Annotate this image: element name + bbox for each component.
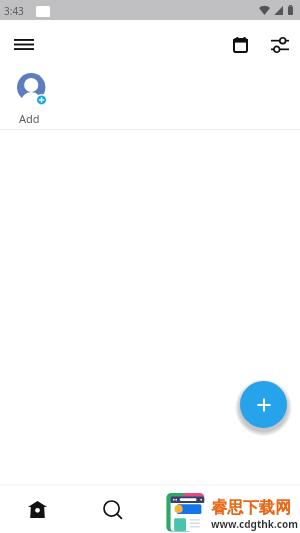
button[interactable]: Profile bbox=[225, 486, 300, 533]
staticText: 3:43 bbox=[4, 4, 24, 18]
staticText: www.cdgthk.com bbox=[211, 517, 298, 531]
button[interactable]: Calendar bbox=[220, 25, 260, 65]
button[interactable]: Add bbox=[6, 68, 56, 126]
button[interactable]: Home bbox=[0, 486, 75, 533]
staticText: Add bbox=[19, 111, 40, 126]
button[interactable]: Search bbox=[75, 486, 150, 533]
button[interactable]: Filter bbox=[260, 25, 300, 65]
button[interactable]: Add bbox=[240, 381, 287, 428]
button[interactable]: Library bbox=[150, 486, 225, 533]
button[interactable]: Menu bbox=[4, 24, 44, 64]
staticText: 睿思下载网 bbox=[211, 498, 291, 518]
